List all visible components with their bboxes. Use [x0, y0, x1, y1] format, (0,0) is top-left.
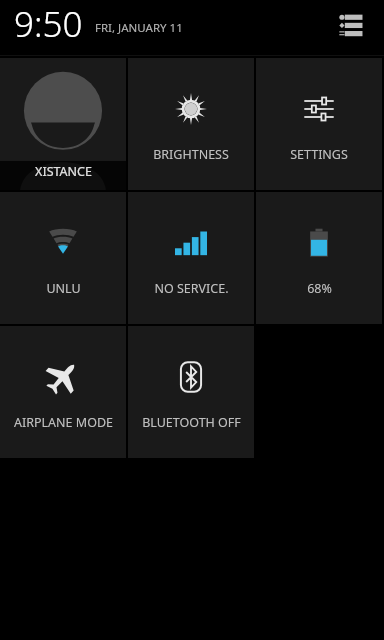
- button[interactable]: UNLU: [0, 192, 126, 324]
- staticText: BRIGHTNESS: [153, 146, 229, 163]
- staticText: UNLU: [46, 280, 81, 297]
- button[interactable]: AIRPLANE MODE: [0, 326, 126, 458]
- staticText: SETTINGS: [290, 146, 348, 163]
- staticText: FRI, JANUARY 11: [95, 20, 183, 36]
- button[interactable]: Settings list: [330, 4, 370, 44]
- button[interactable]: 68%: [256, 192, 382, 324]
- button[interactable]: User XISTANCE: [0, 58, 126, 190]
- button[interactable]: SETTINGS: [256, 58, 382, 190]
- staticText: BLUETOOTH OFF: [142, 414, 241, 431]
- button[interactable]: NO SERVICE.: [128, 192, 254, 324]
- staticText: 68%: [307, 280, 332, 297]
- staticText: 9:50: [14, 0, 83, 48]
- staticText: XISTANCE: [35, 163, 92, 180]
- staticText: NO SERVICE.: [154, 280, 229, 297]
- button[interactable]: BLUETOOTH OFF: [128, 326, 254, 458]
- staticText: AIRPLANE MODE: [14, 414, 113, 431]
- button[interactable]: BRIGHTNESS: [128, 58, 254, 190]
